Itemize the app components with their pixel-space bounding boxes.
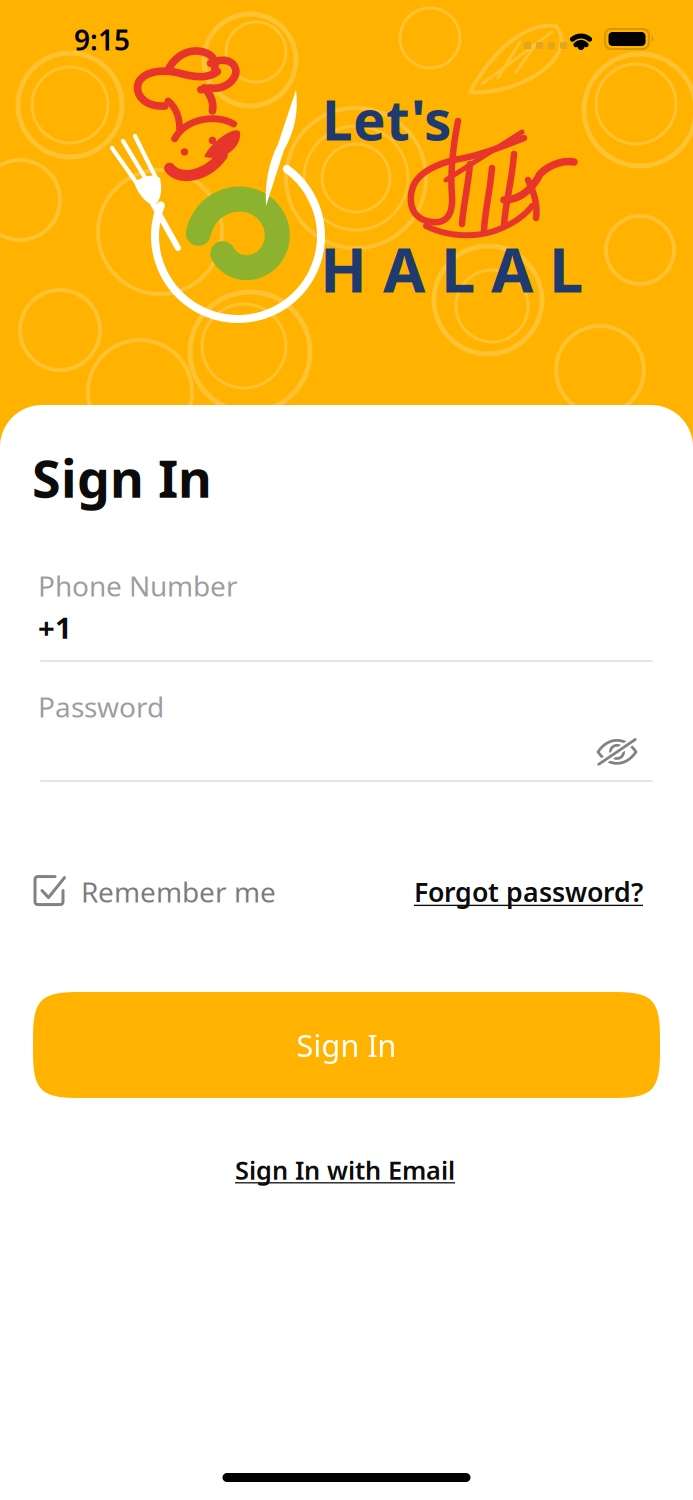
staticText: Sign In — [296, 1025, 396, 1065]
staticText: Sign In — [32, 443, 212, 512]
button[interactable]: Remember me — [33, 873, 276, 910]
button[interactable]: Forgot password? — [414, 874, 643, 909]
staticText: H A L A L — [320, 228, 583, 309]
staticText: Phone Number — [38, 567, 238, 604]
staticText: Password — [38, 688, 164, 725]
staticText: +1 — [38, 608, 72, 647]
staticText: Forgot password? — [414, 874, 643, 909]
button[interactable]: Show password — [596, 737, 638, 767]
staticText: Let's — [322, 83, 451, 156]
staticText: Remember me — [81, 873, 276, 910]
button[interactable]: Sign In with Email — [235, 1153, 455, 1187]
staticText: Sign In with Email — [235, 1153, 455, 1187]
button[interactable]: Sign In — [33, 992, 660, 1098]
staticText: 9:15 — [74, 21, 130, 58]
